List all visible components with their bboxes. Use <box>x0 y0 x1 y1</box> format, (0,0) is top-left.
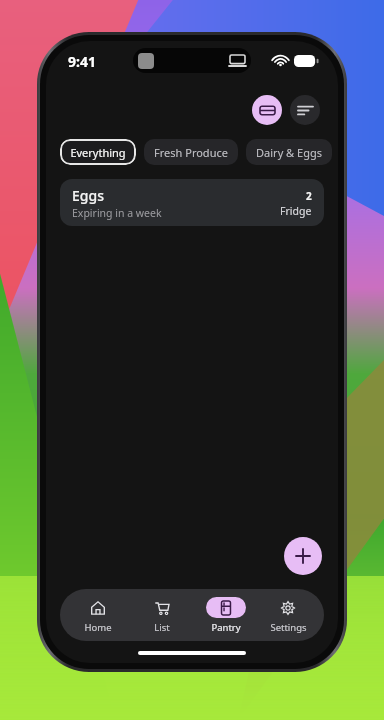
button[interactable]: Pantry <box>194 593 258 638</box>
staticText: Fresh Produce <box>154 145 228 160</box>
staticText: Everything <box>70 145 126 160</box>
button[interactable]: Home <box>66 593 130 638</box>
staticText: Home <box>84 621 112 634</box>
staticText: List <box>154 621 170 634</box>
button[interactable]: Everything <box>60 139 136 165</box>
staticText: Settings <box>270 621 307 634</box>
button[interactable]: List <box>130 593 194 638</box>
staticText: Eggs <box>72 186 104 205</box>
button[interactable]: Eggs <box>60 179 324 226</box>
staticText: 9:41 <box>68 52 96 71</box>
button[interactable]: Sort <box>290 95 320 125</box>
staticText: Fridge <box>280 204 312 218</box>
button[interactable]: Dairy & Eggs <box>246 139 332 165</box>
staticText: Pantry <box>211 621 241 634</box>
staticText: Dairy & Eggs <box>256 145 322 160</box>
button[interactable]: Add item <box>284 537 322 575</box>
button[interactable]: Settings <box>258 593 318 638</box>
staticText: 2 <box>306 189 312 203</box>
button[interactable]: Fresh Produce <box>144 139 238 165</box>
staticText: Expiring in a week <box>72 206 162 220</box>
button[interactable]: Change view <box>252 95 282 125</box>
